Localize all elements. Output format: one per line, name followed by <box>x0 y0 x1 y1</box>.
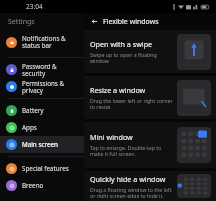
staticText: Password & security <box>22 62 81 78</box>
staticText: Main screen <box>22 140 81 149</box>
staticText: Swipe up to open a floating window <box>90 51 173 65</box>
button[interactable]: Breeno <box>0 177 84 194</box>
staticText: Battery <box>22 106 81 115</box>
button[interactable]: Permissions & privacy <box>0 78 84 95</box>
staticText: Notifications & status bar <box>22 34 81 50</box>
staticText: Apps <box>22 123 81 132</box>
staticText: Tap to enlarge. Double-tap to make it fu… <box>90 144 173 158</box>
button[interactable]: Quickly hide a window <box>84 171 216 201</box>
button[interactable]: Resize a window <box>84 76 216 119</box>
staticText: Special features <box>22 164 81 173</box>
staticText: Flexible windows <box>103 17 159 27</box>
staticText: Resize a window <box>90 85 146 95</box>
button[interactable]: Apps <box>0 119 84 136</box>
button[interactable]: Special features <box>0 160 84 177</box>
button[interactable]: Notifications & status bar <box>0 30 84 54</box>
button[interactable]: Open with a swipe <box>84 30 216 73</box>
staticText: Drag the lower left or right corner to r… <box>90 97 173 111</box>
staticText: Mini window <box>90 132 133 142</box>
button[interactable]: Password & security <box>0 61 84 78</box>
button[interactable]: Mini window <box>84 122 216 168</box>
staticText: Settings <box>8 17 35 27</box>
button[interactable]: Battery <box>0 102 84 119</box>
staticText: Permissions & privacy <box>22 79 81 95</box>
staticText: Quickly hide a window <box>90 174 166 184</box>
staticText: Breeno <box>22 181 81 190</box>
button[interactable]: Back <box>89 16 100 27</box>
staticText: 23:04 <box>26 2 43 11</box>
staticText: Drag a floating window to the left or ri… <box>90 186 173 198</box>
staticText: Open with a swipe <box>90 39 153 49</box>
button[interactable]: Main screen <box>0 136 84 153</box>
